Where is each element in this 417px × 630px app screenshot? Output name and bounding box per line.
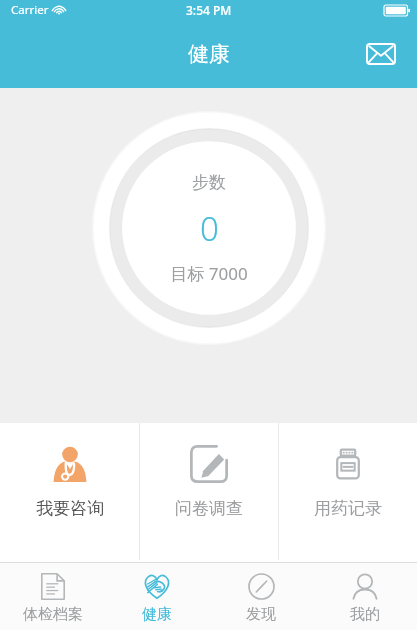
button[interactable]: 发现 xyxy=(209,563,313,630)
button[interactable]: 健康 xyxy=(105,563,209,630)
button[interactable]: 体检档案 xyxy=(0,563,105,630)
staticText: 发现 xyxy=(246,605,276,624)
staticText: 目标 7000 xyxy=(170,262,248,285)
button[interactable]: Messages xyxy=(359,32,403,76)
staticText: 我的 xyxy=(350,605,380,624)
staticText: 用药记录 xyxy=(314,498,382,519)
staticText: 我要咨询 xyxy=(36,498,104,519)
staticText: 体检档案 xyxy=(23,605,83,624)
staticText: 健康 xyxy=(142,605,172,624)
button[interactable]: 问卷调查 xyxy=(140,423,278,562)
staticText: 健康 xyxy=(188,41,230,67)
button[interactable]: 用药记录 xyxy=(279,423,417,562)
staticText: 步数 xyxy=(192,172,226,193)
staticText: 0 xyxy=(200,206,219,251)
staticText: 3:54 PM xyxy=(186,2,232,18)
button[interactable]: 我要咨询 xyxy=(0,423,139,562)
staticText: 问卷调查 xyxy=(175,498,243,519)
button[interactable]: 我的 xyxy=(313,563,417,630)
staticText: Carrier xyxy=(11,2,49,18)
